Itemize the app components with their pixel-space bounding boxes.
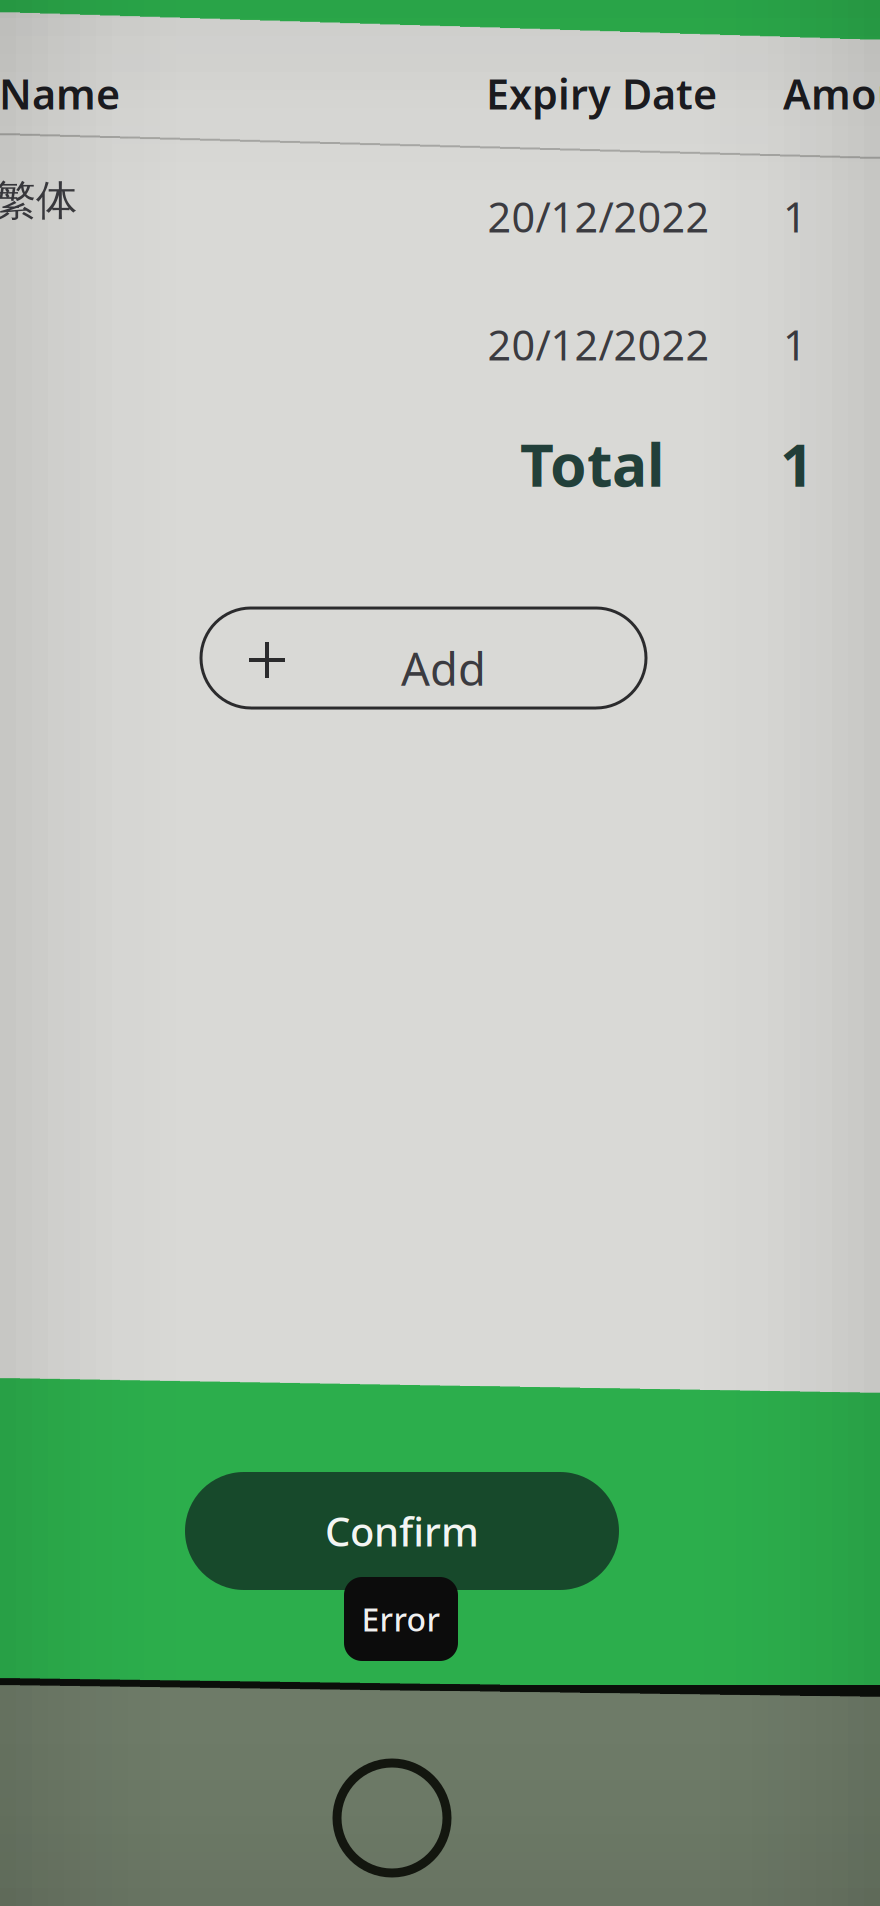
staticText: Name	[0, 66, 120, 121]
staticText: Total	[520, 425, 664, 503]
staticText: 1	[783, 189, 807, 244]
staticText: 1	[783, 317, 807, 372]
staticText: Error	[361, 1598, 440, 1640]
staticText: 1	[780, 425, 814, 503]
staticText: Confirm	[325, 1504, 479, 1557]
staticText: Add	[401, 638, 486, 698]
staticText: Expiry Date	[486, 66, 717, 121]
button[interactable]: Add	[201, 608, 646, 708]
staticText: 繁体	[0, 175, 77, 226]
staticText: Amount	[783, 66, 880, 121]
button[interactable]: Confirm	[185, 1472, 619, 1590]
staticText: 20/12/2022	[487, 189, 709, 244]
staticText: 20/12/2022	[487, 317, 709, 372]
